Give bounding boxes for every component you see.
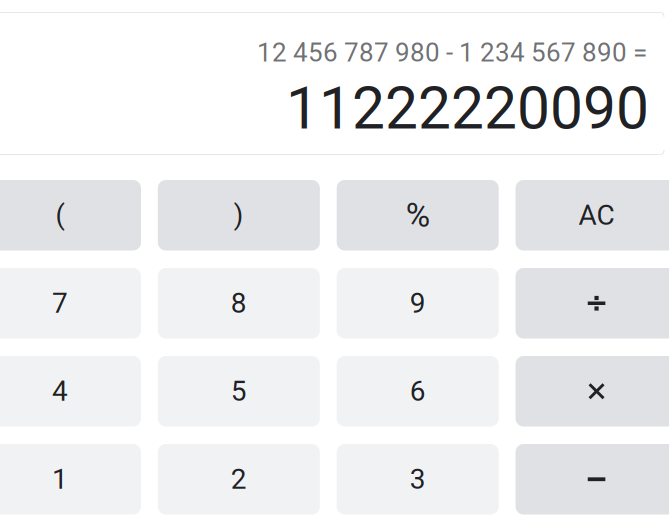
staticText: ( — [55, 199, 64, 231]
button[interactable]: Multiply — [515, 356, 669, 426]
staticText: 8 — [231, 287, 247, 320]
staticText: 7 — [52, 287, 68, 320]
button[interactable]: 7 — [0, 268, 141, 338]
staticText: AC — [578, 199, 614, 232]
button[interactable]: 1 — [0, 444, 141, 514]
button[interactable]: Percent — [337, 180, 499, 250]
button[interactable]: 8 — [158, 268, 320, 338]
button[interactable]: Close parenthesis — [158, 180, 320, 250]
button[interactable]: 5 — [158, 356, 320, 426]
button[interactable]: 4 — [0, 356, 141, 426]
staticText: 3 — [410, 463, 426, 496]
button[interactable]: 6 — [337, 356, 499, 426]
staticText: ) — [234, 199, 244, 231]
staticText: 9 — [410, 287, 426, 320]
button[interactable]: Open parenthesis — [0, 180, 141, 250]
staticText: 5 — [231, 375, 247, 408]
staticText: 6 — [410, 375, 426, 408]
staticText: 2 — [231, 463, 247, 496]
staticText: 4 — [52, 375, 68, 408]
button[interactable]: 2 — [158, 444, 320, 514]
staticText: 11222220090 — [286, 74, 649, 143]
button[interactable]: Divide — [515, 268, 669, 338]
staticText: 12 456 787 980 - 1 234 567 890 = — [257, 37, 647, 68]
staticText: % — [406, 196, 430, 235]
button[interactable]: 3 — [337, 444, 499, 514]
button[interactable]: 9 — [337, 268, 499, 338]
staticText: 1 — [52, 463, 68, 496]
button[interactable]: Minus — [515, 444, 669, 514]
button[interactable]: All clear — [515, 180, 669, 250]
